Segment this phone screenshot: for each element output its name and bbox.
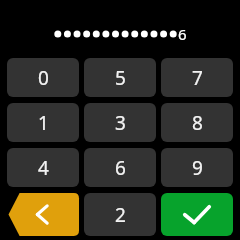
staticText: 8	[192, 110, 203, 136]
button[interactable]: 7	[161, 58, 233, 97]
staticText: 3	[115, 110, 126, 136]
button[interactable]: 1	[7, 103, 79, 142]
staticText: 7	[192, 65, 203, 91]
button[interactable]: 8	[161, 103, 233, 142]
button[interactable]: 2	[84, 193, 156, 236]
button[interactable]: 6	[84, 148, 156, 187]
staticText: 6	[178, 24, 187, 44]
staticText: 0	[38, 65, 49, 91]
staticText: 2	[115, 202, 126, 228]
button[interactable]: 3	[84, 103, 156, 142]
button[interactable]: Confirm	[161, 193, 233, 236]
button[interactable]: 9	[161, 148, 233, 187]
button[interactable]: Backspace	[7, 193, 79, 236]
button[interactable]: 5	[84, 58, 156, 97]
staticText: 5	[115, 65, 126, 91]
button[interactable]: 4	[7, 148, 79, 187]
button[interactable]: 0	[7, 58, 79, 97]
staticText: 1	[38, 110, 49, 136]
staticText: 4	[38, 155, 49, 181]
staticText: 9	[192, 155, 203, 181]
staticText: 6	[115, 155, 126, 181]
